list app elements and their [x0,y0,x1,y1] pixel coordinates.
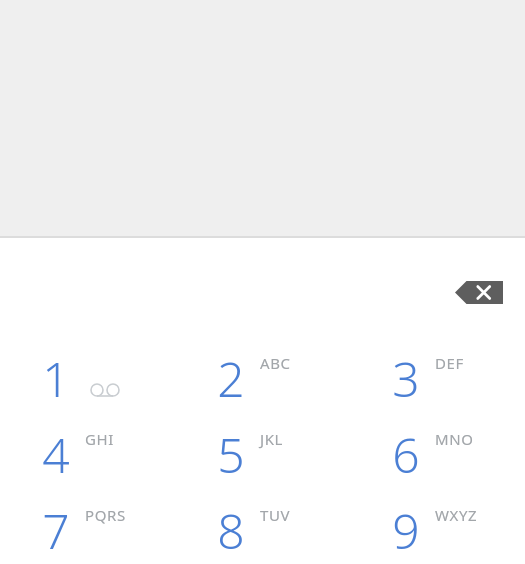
staticText: 1 [42,346,70,408]
button[interactable]: 4 [0,416,175,492]
staticText: JKL [260,429,284,449]
staticText: 9 [392,498,420,560]
button[interactable]: 6 [350,416,525,492]
staticText: 5 [217,422,245,484]
staticText: PQRS [85,505,126,525]
staticText: GHI [85,429,114,449]
button[interactable]: 8 [175,492,350,564]
staticText: WXYZ [435,505,478,525]
button[interactable]: 3 [350,340,525,416]
button[interactable]: 5 [175,416,350,492]
staticText: DEF [435,353,464,373]
staticText: 7 [42,498,70,560]
staticText: 8 [217,498,245,560]
button[interactable]: 7 [0,492,175,564]
button[interactable]: 9 [350,492,525,564]
staticText: TUV [260,505,291,525]
staticText: ABC [260,353,291,373]
button[interactable]: 1 [0,340,175,416]
staticText: 4 [42,422,70,484]
staticText: 3 [392,346,420,408]
staticText: 6 [392,422,420,484]
button[interactable]: Backspace [440,268,518,316]
staticText: MNO [435,429,474,449]
button[interactable]: 2 [175,340,350,416]
staticText: 2 [217,346,245,408]
